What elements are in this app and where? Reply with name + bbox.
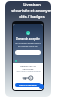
staticText: Livraison xyxy=(23,2,41,7)
staticText: Suivre ma livraison xyxy=(19,84,37,87)
staticText: avec code à usage unique xyxy=(16,70,41,73)
button[interactable]: Suivre ma livraison xyxy=(15,83,41,87)
staticText: clés / badges xyxy=(19,14,45,19)
button[interactable]: Assistance xyxy=(39,84,44,89)
staticText: Demande acceptée xyxy=(16,37,40,41)
staticText: sécurisée et anonyme xyxy=(11,8,54,13)
staticText: en charge votre clé xyxy=(18,45,38,48)
staticText: Un coursier vérifié prend xyxy=(15,42,41,45)
staticText: Remise de clé sécurisée xyxy=(15,64,41,70)
